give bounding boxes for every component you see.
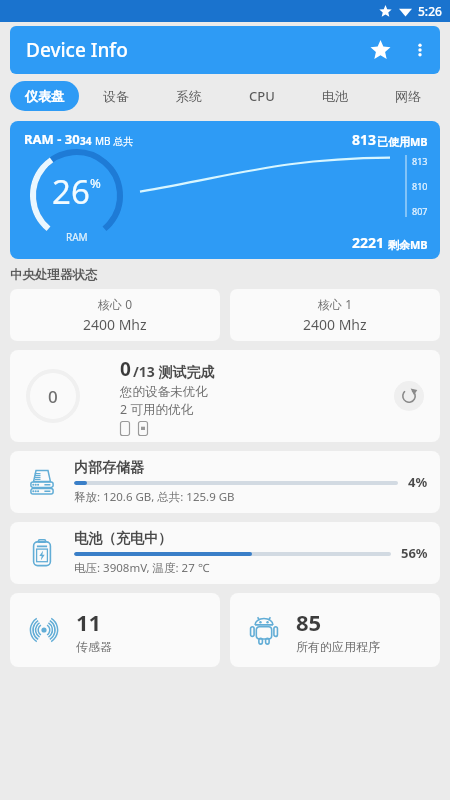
staticText: 2400 Mhz	[83, 315, 147, 334]
button[interactable]: 核心 0	[10, 289, 220, 341]
staticText: CPU	[249, 87, 275, 105]
staticText: 所有的应用程序	[296, 639, 380, 654]
staticText: 2221	[352, 233, 385, 252]
staticText: 系统	[176, 88, 202, 104]
button[interactable]: 设备	[79, 78, 152, 114]
button[interactable]: 85	[230, 593, 440, 667]
staticText: 813	[352, 130, 377, 149]
button[interactable]: 核心 1	[230, 289, 440, 341]
staticText: RAM - 30	[24, 130, 80, 148]
staticText: 56%	[401, 544, 428, 562]
button[interactable]: Favorite	[360, 30, 400, 70]
staticText: 电池	[322, 88, 348, 104]
button[interactable]: CPU	[225, 78, 298, 114]
staticText: 核心 1	[318, 296, 352, 312]
staticText: 807	[412, 205, 428, 217]
staticText: /13 测试完成	[133, 362, 215, 381]
staticText: RAM	[66, 230, 88, 244]
staticText: 您的设备未优化	[120, 384, 208, 400]
button[interactable]: 电池（充电中）	[10, 522, 440, 584]
staticText: Device Info	[26, 37, 128, 63]
staticText: 11	[76, 607, 102, 637]
button[interactable]: More options	[400, 30, 440, 70]
staticText: 已使用MB	[377, 134, 428, 149]
button[interactable]: 系统	[152, 78, 225, 114]
staticText: 传感器	[76, 639, 112, 654]
button[interactable]: 电池	[298, 78, 371, 114]
staticText: 85	[296, 607, 322, 637]
staticText: 0	[48, 385, 58, 408]
staticText: 剩余MB	[388, 237, 428, 252]
button[interactable]: 0	[10, 350, 440, 442]
staticText: 2 可用的优化	[120, 401, 193, 418]
button[interactable]: 仪表盘	[10, 81, 79, 111]
staticText: 810	[412, 180, 428, 192]
button[interactable]: Refresh	[394, 381, 424, 411]
staticText: 核心 0	[98, 296, 132, 312]
staticText: 0	[120, 356, 131, 382]
staticText: 5:26	[418, 3, 442, 19]
staticText: 电池（充电中）	[74, 530, 172, 548]
staticText: 34	[80, 134, 92, 148]
staticText: 释放: 120.6 GB, 总共: 125.9 GB	[74, 489, 235, 505]
staticText: 26	[52, 169, 90, 214]
staticText: 网络	[395, 88, 421, 104]
staticText: 中央处理器状态	[10, 267, 98, 283]
staticText: 2400 Mhz	[303, 315, 367, 334]
staticText: 813	[412, 155, 428, 167]
staticText: %	[90, 174, 101, 192]
button[interactable]: 网络	[371, 78, 444, 114]
staticText: 4%	[408, 473, 428, 491]
staticText: MB 总共	[95, 134, 134, 148]
staticText: 设备	[103, 88, 129, 104]
staticText: 电压: 3908mV, 温度: 27 ℃	[74, 560, 210, 576]
button[interactable]: 11	[10, 593, 220, 667]
button[interactable]: RAM - 30	[10, 121, 440, 259]
staticText: 内部存储器	[74, 459, 144, 477]
staticText: 仪表盘	[25, 88, 64, 104]
button[interactable]: 内部存储器	[10, 451, 440, 513]
